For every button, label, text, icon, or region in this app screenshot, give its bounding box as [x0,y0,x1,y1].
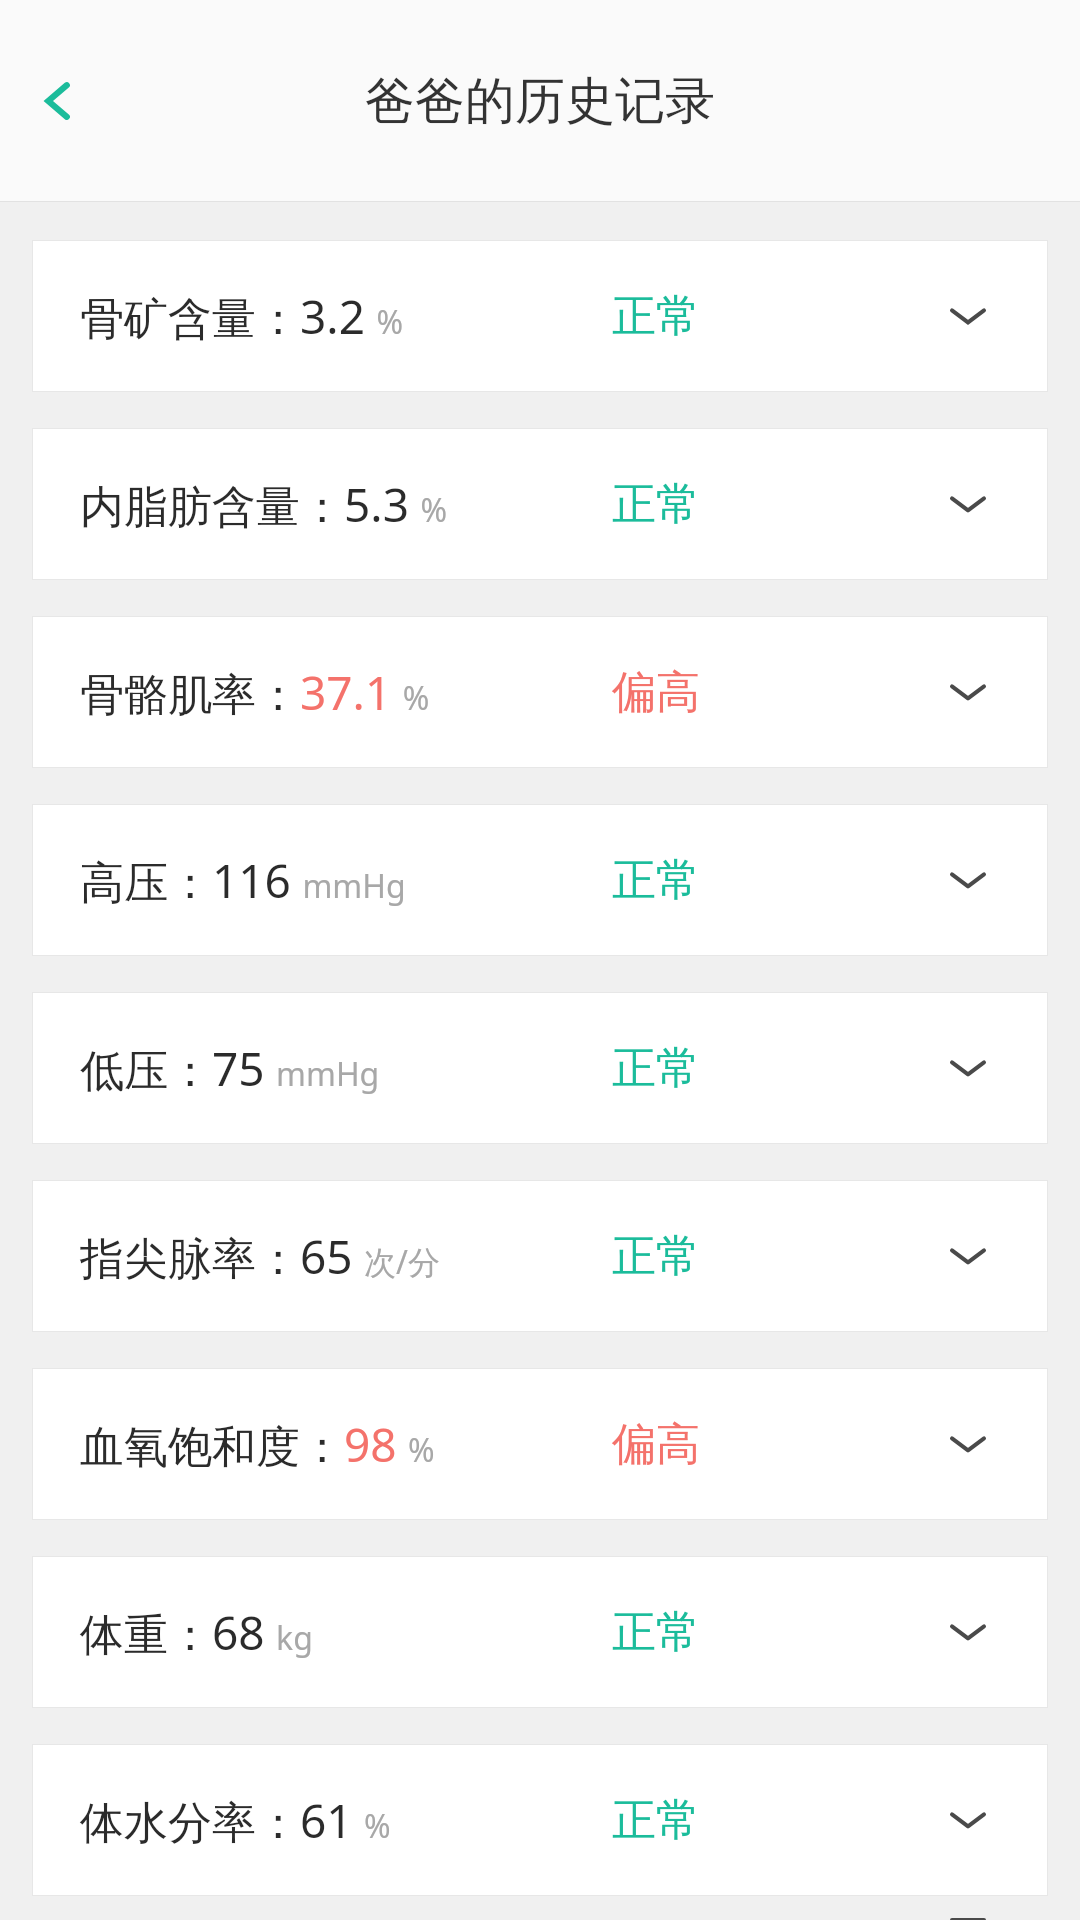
button[interactable]: 展开 [926,1214,1010,1298]
button[interactable]: 体水分率：61 % [32,1744,1048,1896]
button[interactable]: 体重：68 kg [32,1556,1048,1708]
button[interactable]: 展开 [926,1590,1010,1674]
staticText: 正常 [612,1229,700,1284]
button[interactable]: 展开 [926,838,1010,922]
staticText: 体重：68 kg [80,1601,313,1664]
staticText: 高压：116 mmHg [80,849,406,912]
staticText: 正常 [612,1041,700,1096]
button[interactable]: 展开 [926,1778,1010,1862]
staticText: 偏高 [612,1417,700,1472]
button[interactable]: 高压：116 mmHg [32,804,1048,956]
staticText: 低压：75 mmHg [80,1037,380,1100]
button[interactable]: 返回 [10,53,106,149]
staticText: 正常 [612,289,700,344]
button[interactable]: 骨骼肌率：37.1 % [32,616,1048,768]
staticText: 体水分率：61 % [80,1789,391,1852]
button[interactable]: 展开 [926,1402,1010,1486]
button[interactable]: 骨矿含量：3.2 % [32,240,1048,392]
staticText: 骨矿含量：3.2 % [80,285,403,348]
staticText: 正常 [612,853,700,908]
staticText: 爸爸的历史记录 [365,70,715,133]
staticText: 正常 [612,477,700,532]
button[interactable]: 低压：75 mmHg [32,992,1048,1144]
staticText: 正常 [612,1605,700,1660]
staticText: 骨骼肌率：37.1 % [80,661,430,724]
staticText: 偏高 [612,665,700,720]
button[interactable]: 展开 [926,274,1010,358]
button[interactable]: 展开 [926,1026,1010,1110]
button[interactable]: 展开 [926,462,1010,546]
staticText: 指尖脉率：65 次/分 [80,1225,440,1288]
staticText: 内脂肪含量：5.3 % [80,473,447,536]
button[interactable]: 血氧饱和度：98 % [32,1368,1048,1520]
staticText: 血氧饱和度：98 % [80,1413,435,1476]
button[interactable]: 指尖脉率：65 次/分 [32,1180,1048,1332]
staticText: 正常 [612,1793,700,1848]
button[interactable]: 内脂肪含量：5.3 % [32,428,1048,580]
button[interactable]: 展开 [926,650,1010,734]
